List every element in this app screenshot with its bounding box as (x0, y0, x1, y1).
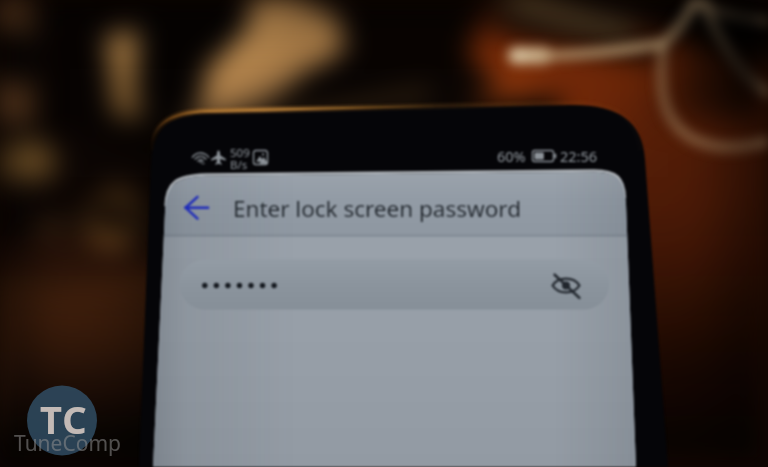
button[interactable]: Show password (545, 265, 587, 307)
button[interactable] (180, 259, 610, 310)
button[interactable]: Back (174, 185, 220, 229)
